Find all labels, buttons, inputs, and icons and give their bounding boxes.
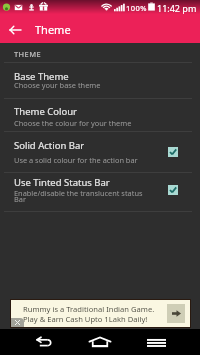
staticText: Theme	[35, 22, 71, 37]
button[interactable]: Open offer	[167, 304, 185, 323]
button[interactable]: Theme Colour	[0, 99, 200, 131]
button[interactable]: Home	[85, 329, 115, 355]
button[interactable]: Toggle Use Tinted Status Bar	[160, 171, 185, 209]
button[interactable]: Navigate back	[0, 14, 29, 43]
staticText: Solid Action Bar	[14, 139, 85, 152]
staticText: Base Theme	[14, 70, 69, 83]
staticText: Enable/disable the translucent status Ba…	[14, 188, 147, 205]
button[interactable]: Base Theme	[0, 63, 200, 98]
staticText: Theme Colour	[14, 105, 77, 118]
button[interactable]: Rummy is a Traditional Indian Game. Play…	[11, 300, 190, 327]
button[interactable]: Use Tinted Status Bar	[0, 173, 200, 211]
staticText: THEME	[14, 49, 42, 59]
staticText: 11:42 pm	[157, 2, 197, 14]
button[interactable]: Solid Action Bar	[0, 132, 200, 172]
staticText: Use Tinted Status Bar	[14, 176, 110, 189]
button[interactable]: Toggle Solid Action Bar	[160, 132, 185, 172]
button[interactable]: Recent apps	[141, 329, 171, 355]
staticText: Use a solid colour for the action bar	[14, 155, 147, 165]
staticText: Rummy is a Traditional Indian Game. Play…	[23, 304, 167, 324]
staticText: Choose your base theme	[14, 80, 147, 90]
button[interactable]: Close ad	[11, 318, 24, 327]
button[interactable]: Back	[28, 329, 58, 355]
staticText: 100%	[126, 3, 148, 13]
staticText: Choose the colour for your theme	[14, 118, 147, 128]
